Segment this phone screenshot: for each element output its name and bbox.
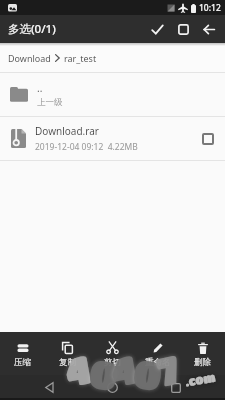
staticText: 剪切 [104, 357, 121, 368]
staticText: 删除 [194, 357, 211, 368]
button[interactable] [100, 375, 125, 400]
staticText: 7 [154, 346, 183, 394]
button[interactable]: 删除 [180, 332, 225, 375]
staticText: 2019-12-04 09:12 4.22MB [35, 141, 138, 153]
button[interactable]: 剪切 [90, 332, 135, 375]
staticText: Download.rar [35, 124, 99, 138]
staticText: 10:12 [199, 2, 221, 14]
staticText: 复制 [59, 357, 76, 368]
button[interactable] [196, 16, 222, 42]
staticText: Download [8, 52, 51, 64]
staticText: 压缩 [14, 357, 31, 368]
staticText: 上一级 [37, 97, 63, 108]
staticText: rar_test [64, 52, 97, 64]
staticText: 4 [108, 346, 140, 394]
staticText: 重命名 [145, 357, 171, 368]
button[interactable]: 复制 [45, 332, 90, 375]
button[interactable] [170, 16, 196, 42]
staticText: .com [184, 369, 217, 389]
button[interactable] [37, 375, 62, 400]
staticText: 4 [62, 346, 94, 394]
button[interactable] [144, 16, 170, 42]
button[interactable]: .. [0, 73, 225, 116]
button[interactable] [202, 133, 214, 145]
staticText: 0 [87, 350, 121, 398]
button[interactable]: 重命名 [135, 332, 180, 375]
staticText: .. [37, 81, 43, 95]
button[interactable] [163, 375, 188, 400]
button[interactable]: Download.rar [0, 117, 225, 160]
button[interactable]: 压缩 [0, 332, 45, 375]
staticText: 多选(0/1) [8, 21, 56, 37]
staticText: 0 [131, 350, 165, 398]
